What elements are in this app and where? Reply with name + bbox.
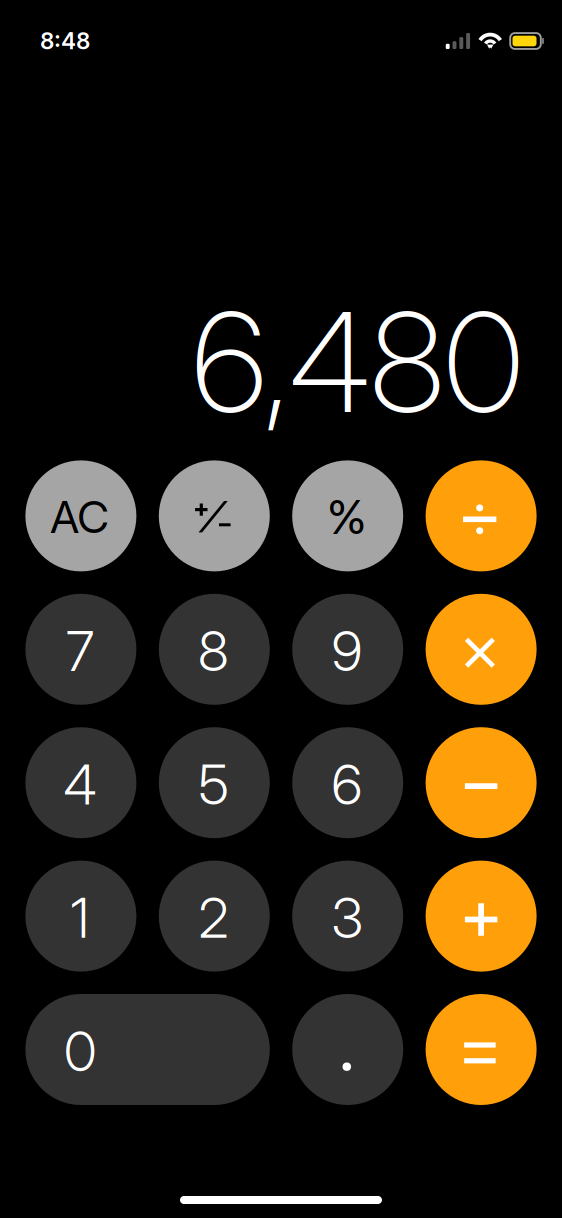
staticText: 7 xyxy=(66,618,94,684)
staticText: 0 xyxy=(64,1018,96,1084)
button[interactable]: Multiply xyxy=(426,594,537,705)
button[interactable]: Subtract xyxy=(426,727,537,838)
button[interactable]: Equals xyxy=(426,994,537,1105)
staticText: % xyxy=(327,489,366,545)
button[interactable]: 6 xyxy=(292,727,403,838)
button[interactable]: 1 xyxy=(25,861,136,972)
button[interactable]: 9 xyxy=(292,594,403,705)
staticText: 8 xyxy=(198,618,229,684)
button[interactable]: 7 xyxy=(25,594,136,705)
staticText: AC xyxy=(50,490,109,544)
staticText: 9 xyxy=(331,618,362,684)
button[interactable]: 0 xyxy=(25,994,270,1105)
button[interactable]: 3 xyxy=(292,861,403,972)
button[interactable]: Percent xyxy=(292,460,403,571)
button[interactable]: Add xyxy=(426,861,537,972)
staticText: 5 xyxy=(198,751,228,817)
button[interactable]: 4 xyxy=(25,727,136,838)
staticText: 8:48 xyxy=(40,27,90,55)
staticText: 4 xyxy=(64,751,97,817)
button[interactable]: Divide xyxy=(426,460,537,571)
button[interactable]: 5 xyxy=(159,727,270,838)
staticText: 2 xyxy=(198,885,228,951)
button[interactable]: 8 xyxy=(159,594,270,705)
staticText: 3 xyxy=(331,885,362,951)
button[interactable]: Plus Minus xyxy=(159,460,270,571)
staticText: 6 xyxy=(331,751,362,817)
staticText: 6,480 xyxy=(192,279,523,445)
button[interactable]: Decimal point xyxy=(292,994,403,1105)
button[interactable]: 2 xyxy=(159,861,270,972)
staticText: 1 xyxy=(71,885,90,951)
button[interactable]: All Clear xyxy=(25,460,136,571)
